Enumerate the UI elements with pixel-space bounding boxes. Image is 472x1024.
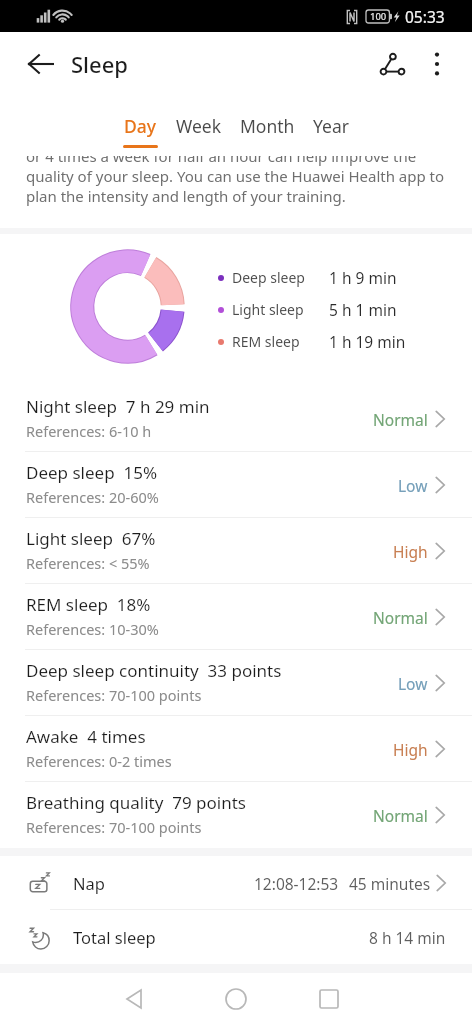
staticText: Light sleep	[232, 300, 304, 319]
staticText: Normal	[373, 409, 428, 430]
button[interactable]: Breathing quality 79 points	[0, 782, 472, 848]
button[interactable]: Deep sleep 15%	[0, 452, 472, 518]
staticText: 1 h 19 min	[329, 331, 406, 352]
staticText: Deep sleep 15%	[26, 461, 158, 484]
staticText: Low	[398, 673, 428, 694]
staticText: Night sleep 7 h 29 min	[26, 395, 210, 418]
staticText: References: < 55%	[26, 553, 150, 573]
button[interactable]: Recent apps	[305, 975, 353, 1023]
staticText: Normal	[373, 805, 428, 826]
staticText: 100	[370, 10, 387, 23]
staticText: Normal	[373, 607, 428, 628]
staticText: Month	[240, 114, 295, 138]
button[interactable]: Back	[21, 44, 61, 84]
button[interactable]: Awake 4 times	[0, 716, 472, 782]
staticText: Week	[176, 114, 222, 138]
staticText: 1 h 9 min	[329, 267, 397, 288]
staticText: 12:08-12:53	[254, 873, 339, 894]
button[interactable]: REM sleep 18%	[0, 584, 472, 650]
button[interactable]: Light sleep 67%	[0, 518, 472, 584]
staticText: 05:33	[405, 6, 445, 27]
button[interactable]: Month	[231, 96, 304, 145]
staticText: Light sleep 67%	[26, 527, 156, 550]
button[interactable]: Week	[167, 96, 231, 145]
staticText: 8 h 14 min	[369, 927, 446, 948]
staticText: High	[393, 541, 428, 562]
staticText: Total sleep	[73, 926, 156, 948]
button[interactable]: Back	[111, 975, 159, 1023]
staticText: References: 0-2 times	[26, 751, 172, 771]
button[interactable]: Home	[212, 975, 260, 1023]
staticText: Deep sleep continuity 33 points	[26, 659, 282, 682]
staticText: References: 6-10 h	[26, 421, 152, 441]
staticText: 5 h 1 min	[329, 299, 397, 320]
staticText: Year	[313, 114, 349, 138]
button[interactable]: Day	[114, 96, 167, 148]
button[interactable]: Night sleep 7 h 29 min	[0, 386, 472, 452]
staticText: or 4 times a week for half an hour can h…	[26, 156, 450, 206]
button[interactable]: Total sleep	[0, 910, 472, 964]
staticText: Day	[124, 114, 157, 138]
staticText: REM sleep 18%	[26, 593, 151, 616]
staticText: References: 70-100 points	[26, 817, 202, 837]
button[interactable]: Year	[304, 96, 358, 145]
button[interactable]: Share	[373, 42, 417, 86]
staticText: Breathing quality 79 points	[26, 791, 246, 814]
button[interactable]: More options	[417, 44, 457, 84]
staticText: References: 10-30%	[26, 619, 159, 639]
staticText: REM sleep	[232, 332, 300, 351]
staticText: Low	[398, 475, 428, 496]
staticText: References: 20-60%	[26, 487, 159, 507]
button[interactable]: Deep sleep continuity 33 points	[0, 650, 472, 716]
staticText: Nap	[73, 872, 105, 894]
staticText: 45 minutes	[349, 873, 431, 894]
staticText: High	[393, 739, 428, 760]
staticText: Deep sleep	[232, 268, 305, 287]
button[interactable]: Nap	[0, 856, 472, 910]
staticText: Sleep	[71, 49, 128, 79]
staticText: References: 70-100 points	[26, 685, 202, 705]
staticText: Awake 4 times	[26, 725, 146, 748]
